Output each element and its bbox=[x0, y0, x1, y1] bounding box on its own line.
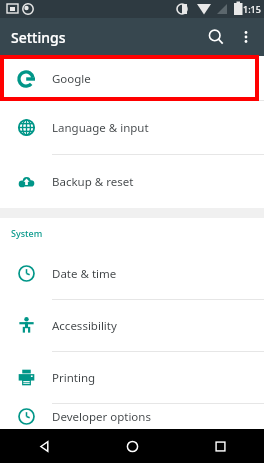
button[interactable]: Google bbox=[0, 58, 264, 100]
staticText: Backup & reset bbox=[52, 174, 134, 190]
button[interactable]: Developer options bbox=[0, 404, 264, 429]
button[interactable]: Back bbox=[0, 429, 88, 463]
staticText: Date & time bbox=[52, 266, 117, 282]
button[interactable]: Date & time bbox=[0, 248, 264, 299]
staticText: System bbox=[11, 227, 43, 239]
staticText: 1:15 bbox=[243, 3, 261, 15]
button[interactable]: Printing bbox=[0, 352, 264, 403]
staticText: Language & input bbox=[52, 120, 149, 136]
button[interactable]: Home bbox=[88, 429, 176, 463]
button[interactable]: Search bbox=[200, 21, 232, 53]
staticText: Printing bbox=[52, 370, 96, 386]
button[interactable]: Accessibility bbox=[0, 300, 264, 351]
button[interactable]: Language & input bbox=[0, 101, 264, 154]
staticText: Accessibility bbox=[52, 318, 117, 334]
staticText: Developer options bbox=[52, 409, 151, 425]
button[interactable]: More options bbox=[232, 23, 260, 51]
staticText: Settings bbox=[11, 28, 66, 47]
button[interactable]: Recent apps bbox=[176, 429, 264, 463]
staticText: Google bbox=[52, 71, 91, 87]
button[interactable]: Backup & reset bbox=[0, 155, 264, 208]
